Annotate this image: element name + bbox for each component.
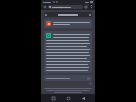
button[interactable]: Back	[80, 95, 86, 101]
button[interactable]: Home	[65, 95, 71, 101]
button[interactable]: Send	[44, 75, 92, 81]
button[interactable]	[48, 5, 83, 9]
button[interactable]: Tabs	[84, 5, 88, 9]
button[interactable]: Scroll to bottom	[89, 82, 92, 85]
button[interactable]: More options	[89, 5, 93, 9]
button[interactable]: Recents	[50, 95, 56, 101]
button[interactable]	[44, 19, 92, 28]
button[interactable]: Site settings	[43, 5, 47, 9]
button[interactable]	[44, 31, 92, 73]
button[interactable]	[44, 12, 92, 17]
